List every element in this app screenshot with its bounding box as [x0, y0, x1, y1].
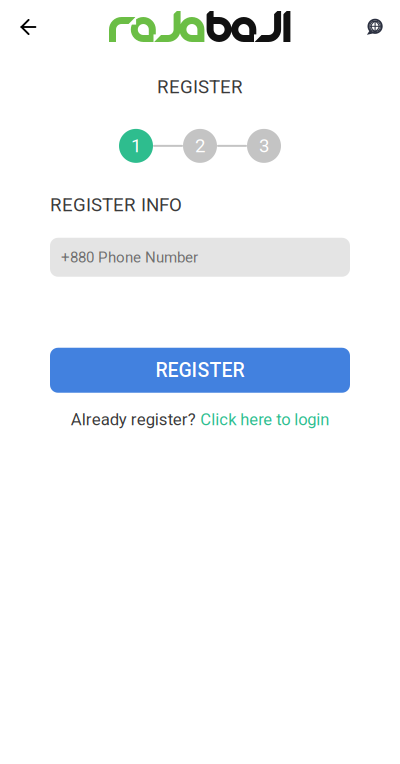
staticText: Already register?: [71, 410, 196, 429]
staticText: +880 Phone Number: [61, 248, 198, 266]
staticText: 2: [195, 135, 205, 157]
staticText: Click here to login: [200, 410, 329, 429]
staticText: REGISTER INFO: [50, 194, 182, 216]
button[interactable]: Language: [351, 1, 399, 50]
button[interactable]: Click here to login: [200, 410, 329, 429]
staticText: 1: [131, 135, 141, 157]
staticText: 3: [259, 135, 269, 157]
button[interactable]: REGISTER: [50, 348, 350, 393]
staticText: REGISTER: [157, 76, 243, 98]
staticText: REGISTER: [155, 359, 244, 382]
button[interactable]: Back: [4, 1, 52, 50]
